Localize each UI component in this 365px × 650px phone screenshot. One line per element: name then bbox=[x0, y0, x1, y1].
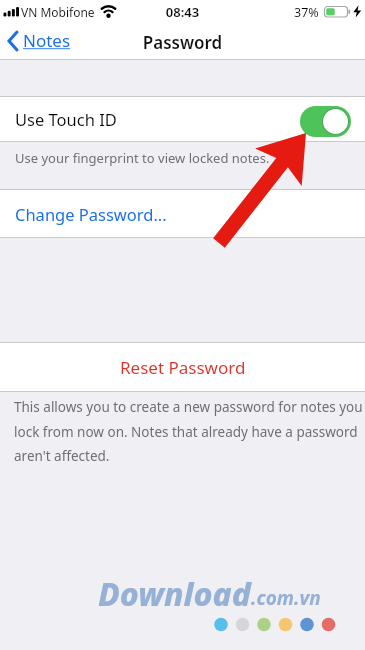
button[interactable] bbox=[300, 106, 351, 137]
staticText: 37% bbox=[294, 4, 319, 21]
staticText: Reset Password bbox=[120, 356, 246, 379]
staticText: Use Touch ID bbox=[15, 108, 117, 130]
staticText: .com.vn bbox=[251, 585, 321, 611]
staticText: 08:43 bbox=[0, 3, 365, 21]
button[interactable]: Use Touch ID bbox=[0, 97, 365, 141]
staticText: VN Mobifone bbox=[21, 4, 95, 20]
staticText: Download bbox=[98, 572, 251, 616]
staticText: This allows you to create a new password… bbox=[14, 398, 363, 465]
button[interactable]: Notes bbox=[6, 29, 71, 52]
staticText: Notes bbox=[23, 29, 71, 52]
button[interactable]: Change Password... bbox=[0, 190, 365, 237]
staticText: Use your fingerprint to view locked note… bbox=[15, 149, 270, 167]
staticText: Password bbox=[0, 31, 365, 54]
staticText: Change Password... bbox=[15, 203, 167, 225]
button[interactable]: Reset Password bbox=[0, 343, 365, 391]
